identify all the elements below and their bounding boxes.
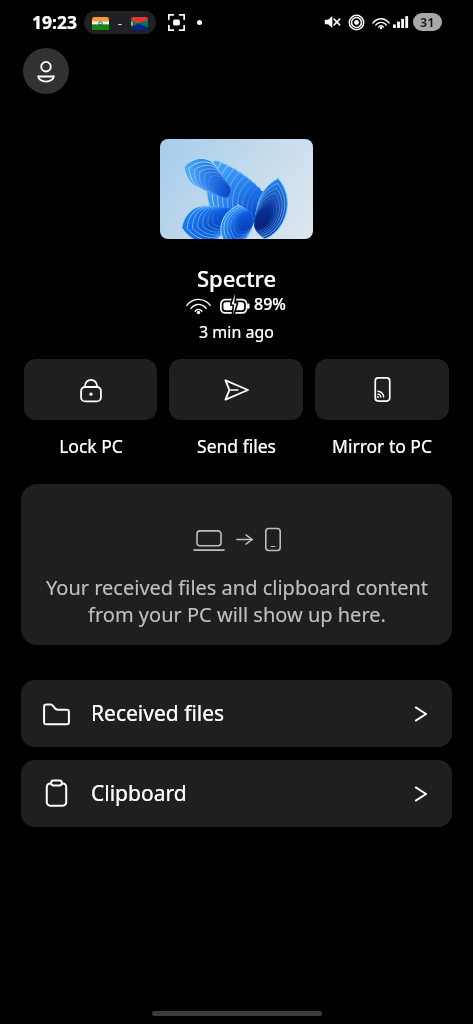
staticText: - bbox=[118, 15, 122, 31]
staticText: Lock PC bbox=[59, 434, 123, 458]
staticText: 31 bbox=[420, 14, 435, 31]
staticText: 89% bbox=[254, 293, 286, 315]
staticText: 19:23 bbox=[32, 10, 77, 34]
staticText: Clipboard bbox=[91, 779, 187, 808]
button[interactable]: Received files bbox=[21, 680, 452, 747]
button[interactable]: Mirror to PC bbox=[315, 359, 449, 458]
staticText: Received files bbox=[91, 699, 225, 728]
button[interactable]: Lock PC bbox=[24, 359, 157, 458]
button[interactable]: Account bbox=[23, 48, 69, 94]
staticText: Mirror to PC bbox=[332, 434, 432, 458]
button[interactable]: Send files bbox=[169, 359, 303, 458]
button[interactable]: Clipboard bbox=[21, 760, 452, 827]
staticText: Spectre bbox=[197, 263, 277, 293]
staticText: 3 min ago bbox=[199, 321, 274, 343]
staticText: Send files bbox=[197, 434, 276, 458]
staticText: Your received files and clipboard conten… bbox=[42, 574, 432, 628]
